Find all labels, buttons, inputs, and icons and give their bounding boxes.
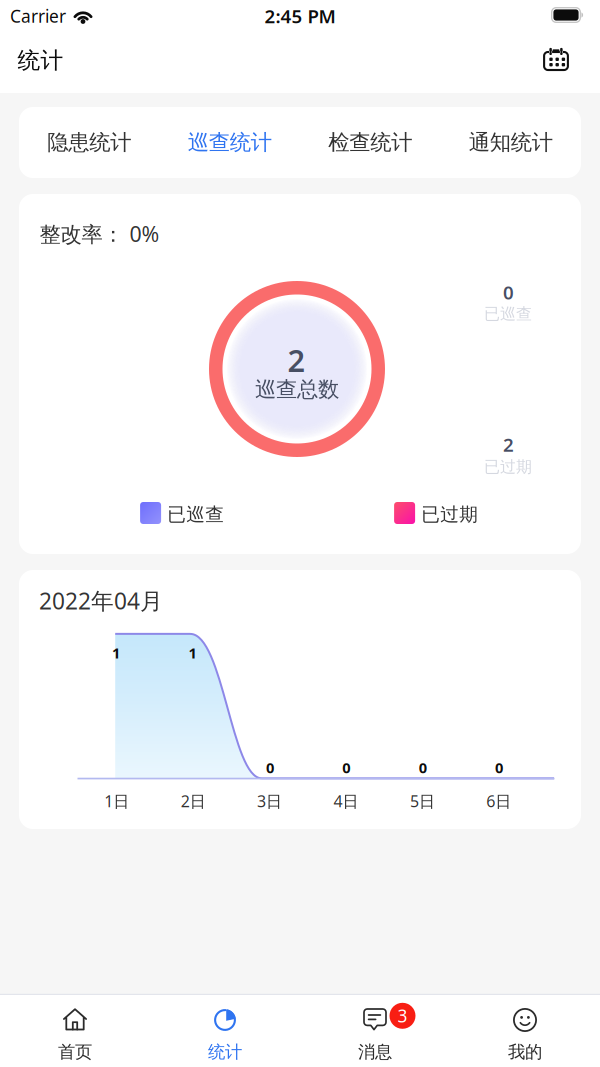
- staticText: 首页: [58, 1041, 92, 1063]
- staticText: Carrier: [10, 4, 66, 27]
- staticText: 2: [503, 432, 514, 457]
- staticText: 3日: [257, 790, 282, 812]
- staticText: 巡查总数: [255, 376, 339, 403]
- staticText: 已巡查: [167, 503, 224, 526]
- staticText: 2022年04月: [39, 585, 163, 616]
- button[interactable]: 首页: [0, 995, 150, 1067]
- staticText: 已巡查: [484, 304, 532, 324]
- staticText: 1: [188, 643, 196, 663]
- button[interactable]: 检查统计: [300, 107, 440, 178]
- button[interactable]: 统计: [150, 995, 300, 1067]
- staticText: 巡查统计: [188, 129, 272, 156]
- staticText: 0: [342, 758, 350, 777]
- staticText: 2: [288, 340, 306, 380]
- staticText: 1: [112, 643, 120, 663]
- staticText: 3: [397, 1004, 407, 1027]
- button[interactable]: 3: [300, 995, 450, 1067]
- staticText: 统计: [208, 1041, 242, 1063]
- staticText: 0: [503, 280, 514, 305]
- staticText: 消息: [358, 1041, 392, 1063]
- staticText: 0: [419, 758, 427, 777]
- staticText: 通知统计: [469, 129, 553, 156]
- staticText: 统计: [18, 47, 64, 74]
- staticText: 5日: [410, 790, 435, 812]
- staticText: 隐患统计: [47, 129, 131, 156]
- staticText: 已过期: [484, 457, 532, 477]
- button[interactable]: 我的: [450, 995, 600, 1067]
- staticText: 1日: [104, 790, 129, 812]
- staticText: 4日: [333, 790, 358, 812]
- staticText: 6日: [486, 790, 511, 812]
- button[interactable]: 日历: [532, 37, 580, 82]
- staticText: 我的: [508, 1041, 542, 1063]
- staticText: 2:45 PM: [264, 4, 335, 28]
- staticText: 已过期: [421, 503, 478, 526]
- staticText: 0: [266, 758, 274, 777]
- staticText: 整改率： 0%: [39, 219, 159, 248]
- staticText: 2日: [181, 790, 206, 812]
- staticText: 检查统计: [328, 129, 412, 156]
- button[interactable]: 隐患统计: [19, 107, 159, 178]
- button[interactable]: 通知统计: [440, 107, 581, 178]
- staticText: 0: [495, 758, 503, 777]
- button[interactable]: 巡查统计: [159, 107, 300, 178]
